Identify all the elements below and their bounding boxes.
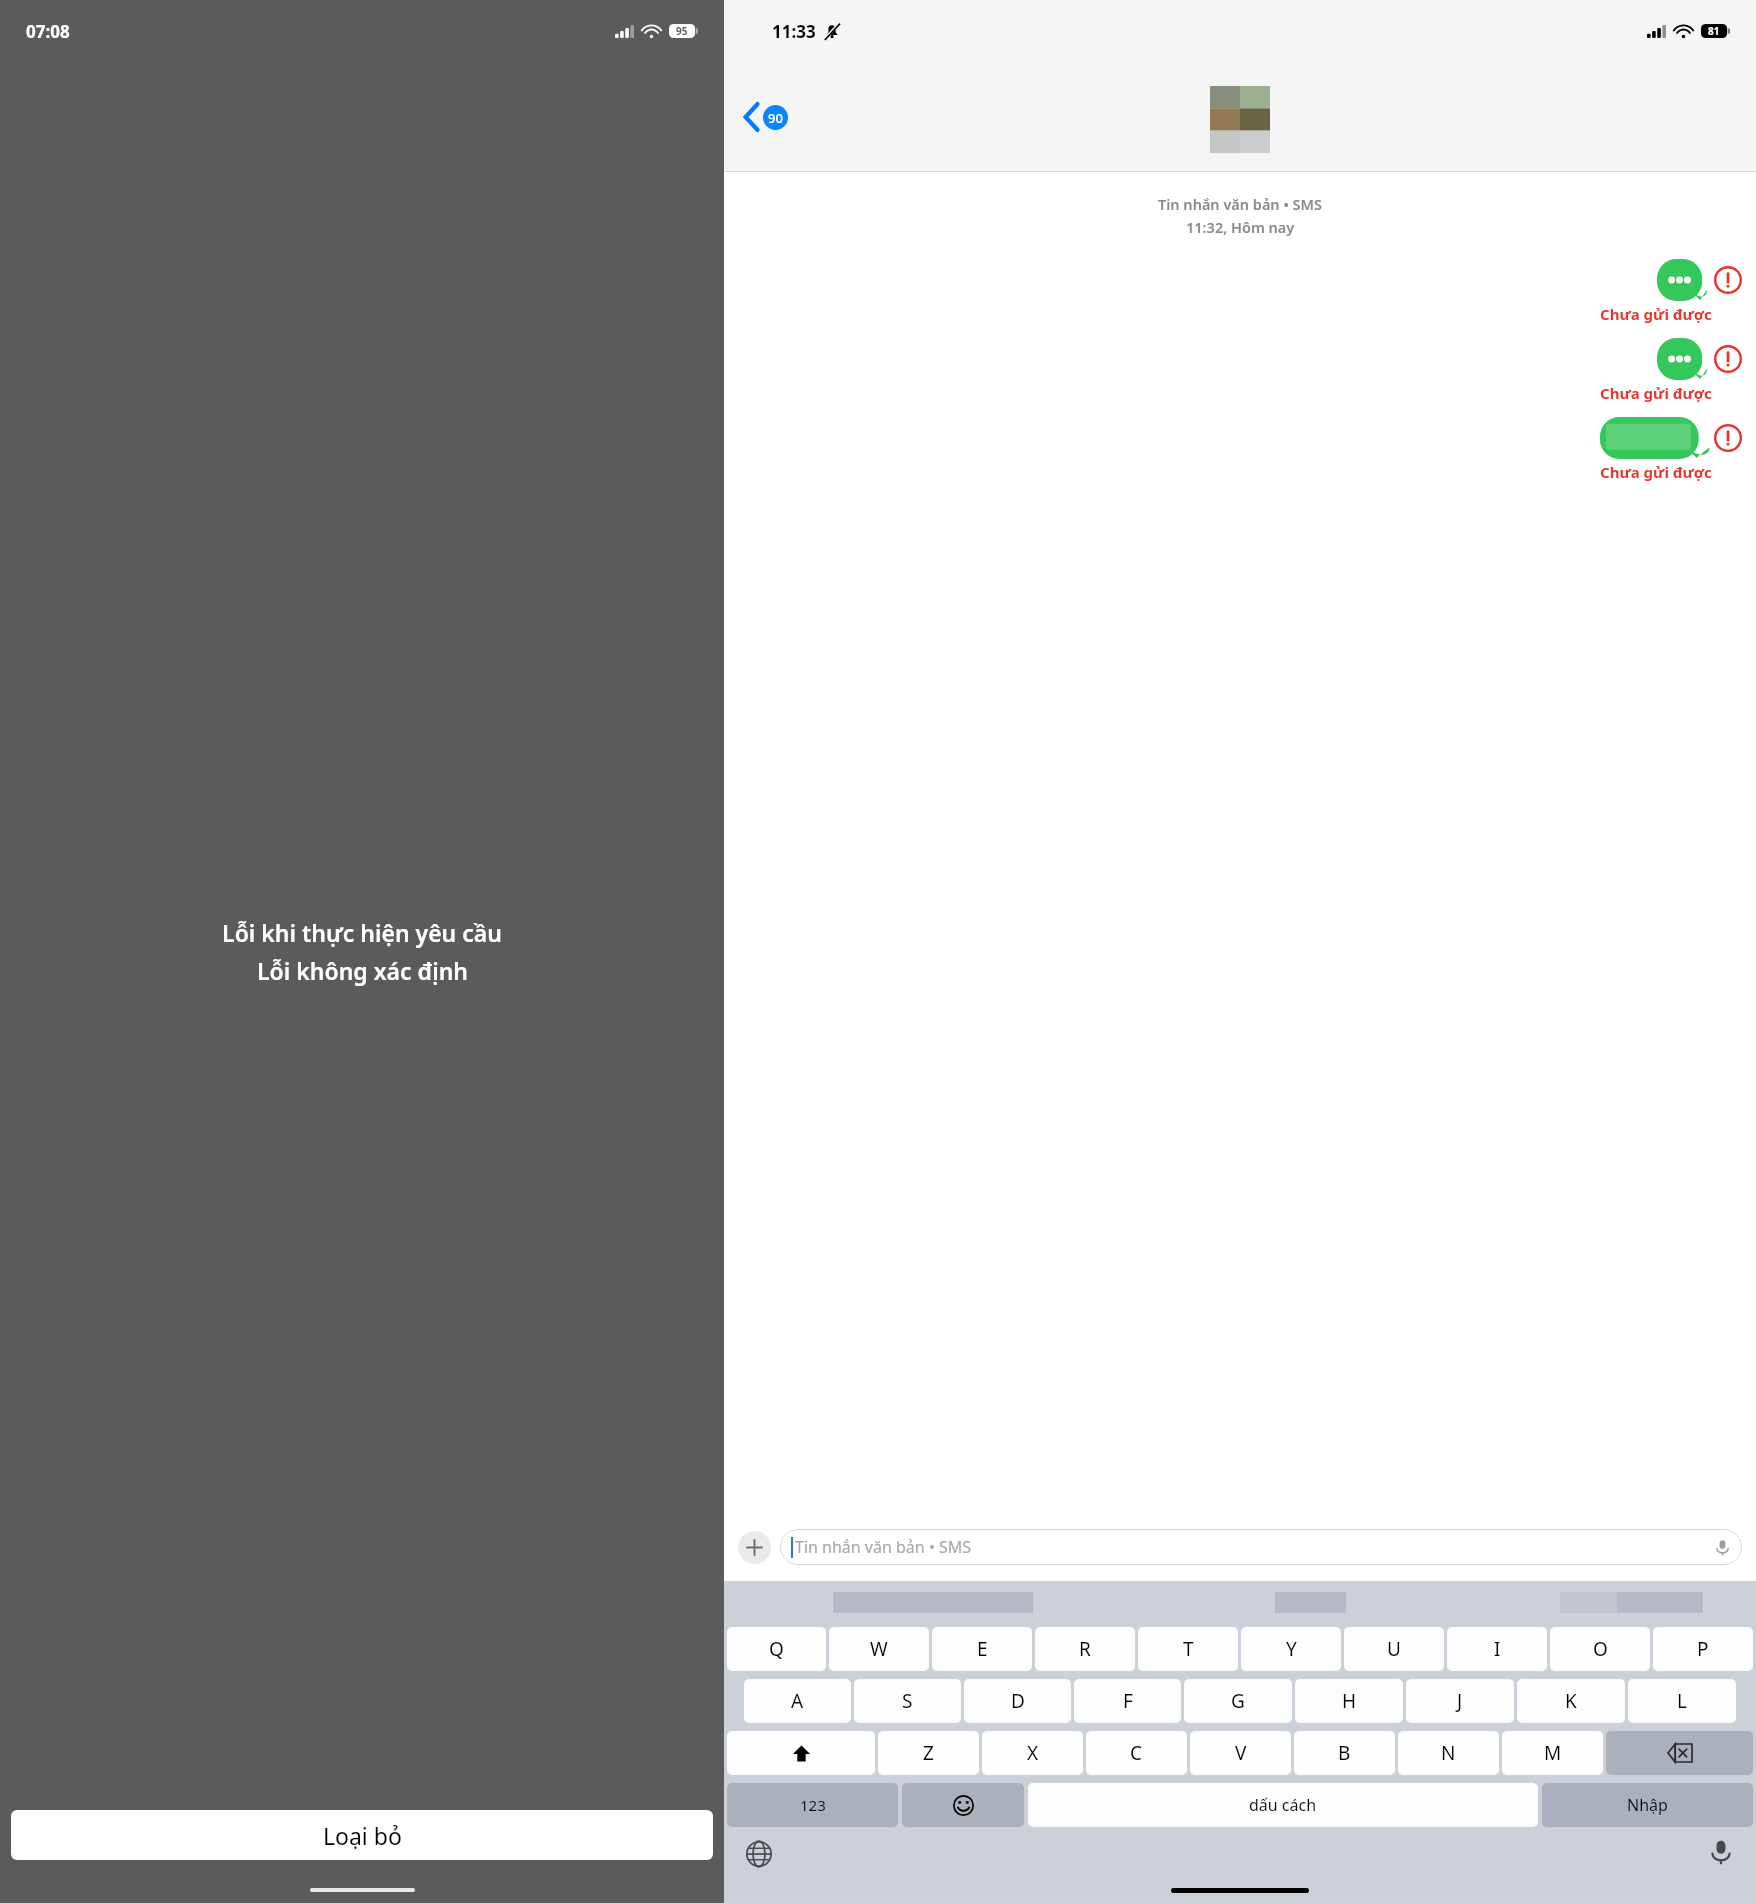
staticText: B <box>1338 1740 1351 1766</box>
button[interactable]: Not delivered <box>1714 424 1742 452</box>
button[interactable]: C <box>1086 1731 1187 1775</box>
button[interactable]: D <box>964 1679 1071 1723</box>
staticText: X <box>1027 1740 1039 1766</box>
other: Dictate <box>1714 1539 1731 1556</box>
staticText: P <box>1697 1636 1709 1662</box>
staticText: T <box>1183 1636 1194 1662</box>
staticText: Y <box>1286 1636 1297 1662</box>
button[interactable]: B <box>1294 1731 1395 1775</box>
button[interactable]: Z <box>878 1731 979 1775</box>
staticText: 11:32, Hôm nay <box>1186 217 1295 237</box>
staticText: U <box>1387 1636 1401 1662</box>
button[interactable]: M <box>1502 1731 1603 1775</box>
staticText: E <box>977 1636 988 1662</box>
staticText: F <box>1123 1688 1133 1714</box>
staticText: Tin nhắn văn bản • SMS <box>795 1536 972 1558</box>
staticText: L <box>1677 1688 1687 1714</box>
button[interactable]: Change keyboard <box>746 1841 772 1867</box>
button[interactable]: N <box>1398 1731 1499 1775</box>
staticText: J <box>1457 1688 1463 1714</box>
staticText: 07:08 <box>26 20 70 43</box>
button[interactable]: G <box>1184 1679 1292 1723</box>
button[interactable]: J <box>1406 1679 1514 1723</box>
button[interactable]: L <box>1628 1679 1736 1723</box>
button[interactable]: dấu cách <box>1028 1783 1538 1827</box>
button[interactable]: P <box>1653 1627 1753 1671</box>
staticText: V <box>1235 1740 1247 1766</box>
button[interactable]: T <box>1138 1627 1238 1671</box>
staticText: S <box>902 1688 913 1714</box>
staticText: 11:33 <box>772 20 816 43</box>
button[interactable]: F <box>1074 1679 1181 1723</box>
staticText: 81 <box>1708 24 1720 38</box>
button[interactable]: R <box>1035 1627 1135 1671</box>
staticText: Chưa gửi được <box>1600 304 1712 324</box>
button[interactable] <box>1657 259 1705 301</box>
staticText: 90 <box>768 109 783 127</box>
staticText: A <box>791 1688 804 1714</box>
staticText: Lỗi khi thực hiện yêu cầu <box>222 917 502 948</box>
staticText: dấu cách <box>1249 1794 1317 1816</box>
staticText: O <box>1593 1636 1608 1662</box>
button[interactable]: 123 <box>727 1783 898 1827</box>
button[interactable]: A <box>744 1679 851 1723</box>
button[interactable]: Back, 90 unread <box>738 98 794 136</box>
staticText: Z <box>923 1740 934 1766</box>
button[interactable]: Add attachment <box>738 1531 771 1564</box>
staticText: W <box>870 1636 888 1662</box>
staticText: Chưa gửi được <box>1600 383 1712 403</box>
button[interactable]: I <box>1447 1627 1547 1671</box>
staticText: Q <box>769 1636 784 1662</box>
button[interactable] <box>1600 417 1705 459</box>
staticText: I <box>1494 1636 1501 1662</box>
staticText: C <box>1130 1740 1143 1766</box>
staticText: Chưa gửi được <box>1600 462 1712 482</box>
staticText: N <box>1441 1740 1456 1766</box>
staticText: Loại bỏ <box>323 1820 402 1851</box>
button[interactable] <box>1657 338 1705 380</box>
staticText: H <box>1342 1688 1357 1714</box>
staticText: K <box>1565 1688 1577 1714</box>
button[interactable]: Tin nhắn văn bản • SMS <box>780 1529 1742 1565</box>
button[interactable]: Dictate <box>1708 1839 1734 1865</box>
button[interactable]: Loại bỏ <box>11 1810 713 1860</box>
button[interactable]: Y <box>1241 1627 1341 1671</box>
button[interactable]: Not delivered <box>1714 345 1742 373</box>
button[interactable]: W <box>829 1627 929 1671</box>
staticText: Tin nhắn văn bản • SMS <box>1158 194 1323 214</box>
button[interactable]: Shift <box>727 1731 875 1775</box>
button[interactable]: X <box>982 1731 1083 1775</box>
staticText: 95 <box>676 24 688 38</box>
button[interactable]: Emoji <box>902 1783 1024 1827</box>
staticText: M <box>1544 1740 1562 1766</box>
staticText: G <box>1231 1688 1245 1714</box>
button[interactable]: S <box>854 1679 961 1723</box>
staticText: Lỗi không xác định <box>257 955 468 986</box>
button[interactable]: Nhập <box>1542 1783 1753 1827</box>
button[interactable]: E <box>932 1627 1032 1671</box>
button[interactable]: U <box>1344 1627 1444 1671</box>
button[interactable]: O <box>1550 1627 1650 1671</box>
button[interactable]: K <box>1517 1679 1625 1723</box>
button[interactable]: Not delivered <box>1714 266 1742 294</box>
staticText: D <box>1011 1688 1025 1714</box>
staticText: R <box>1079 1636 1091 1662</box>
button[interactable]: Delete <box>1606 1731 1753 1775</box>
staticText: Nhập <box>1627 1794 1668 1816</box>
button[interactable]: Q <box>727 1627 826 1671</box>
staticText: 123 <box>800 1795 826 1815</box>
button[interactable]: H <box>1295 1679 1403 1723</box>
button[interactable]: V <box>1190 1731 1291 1775</box>
